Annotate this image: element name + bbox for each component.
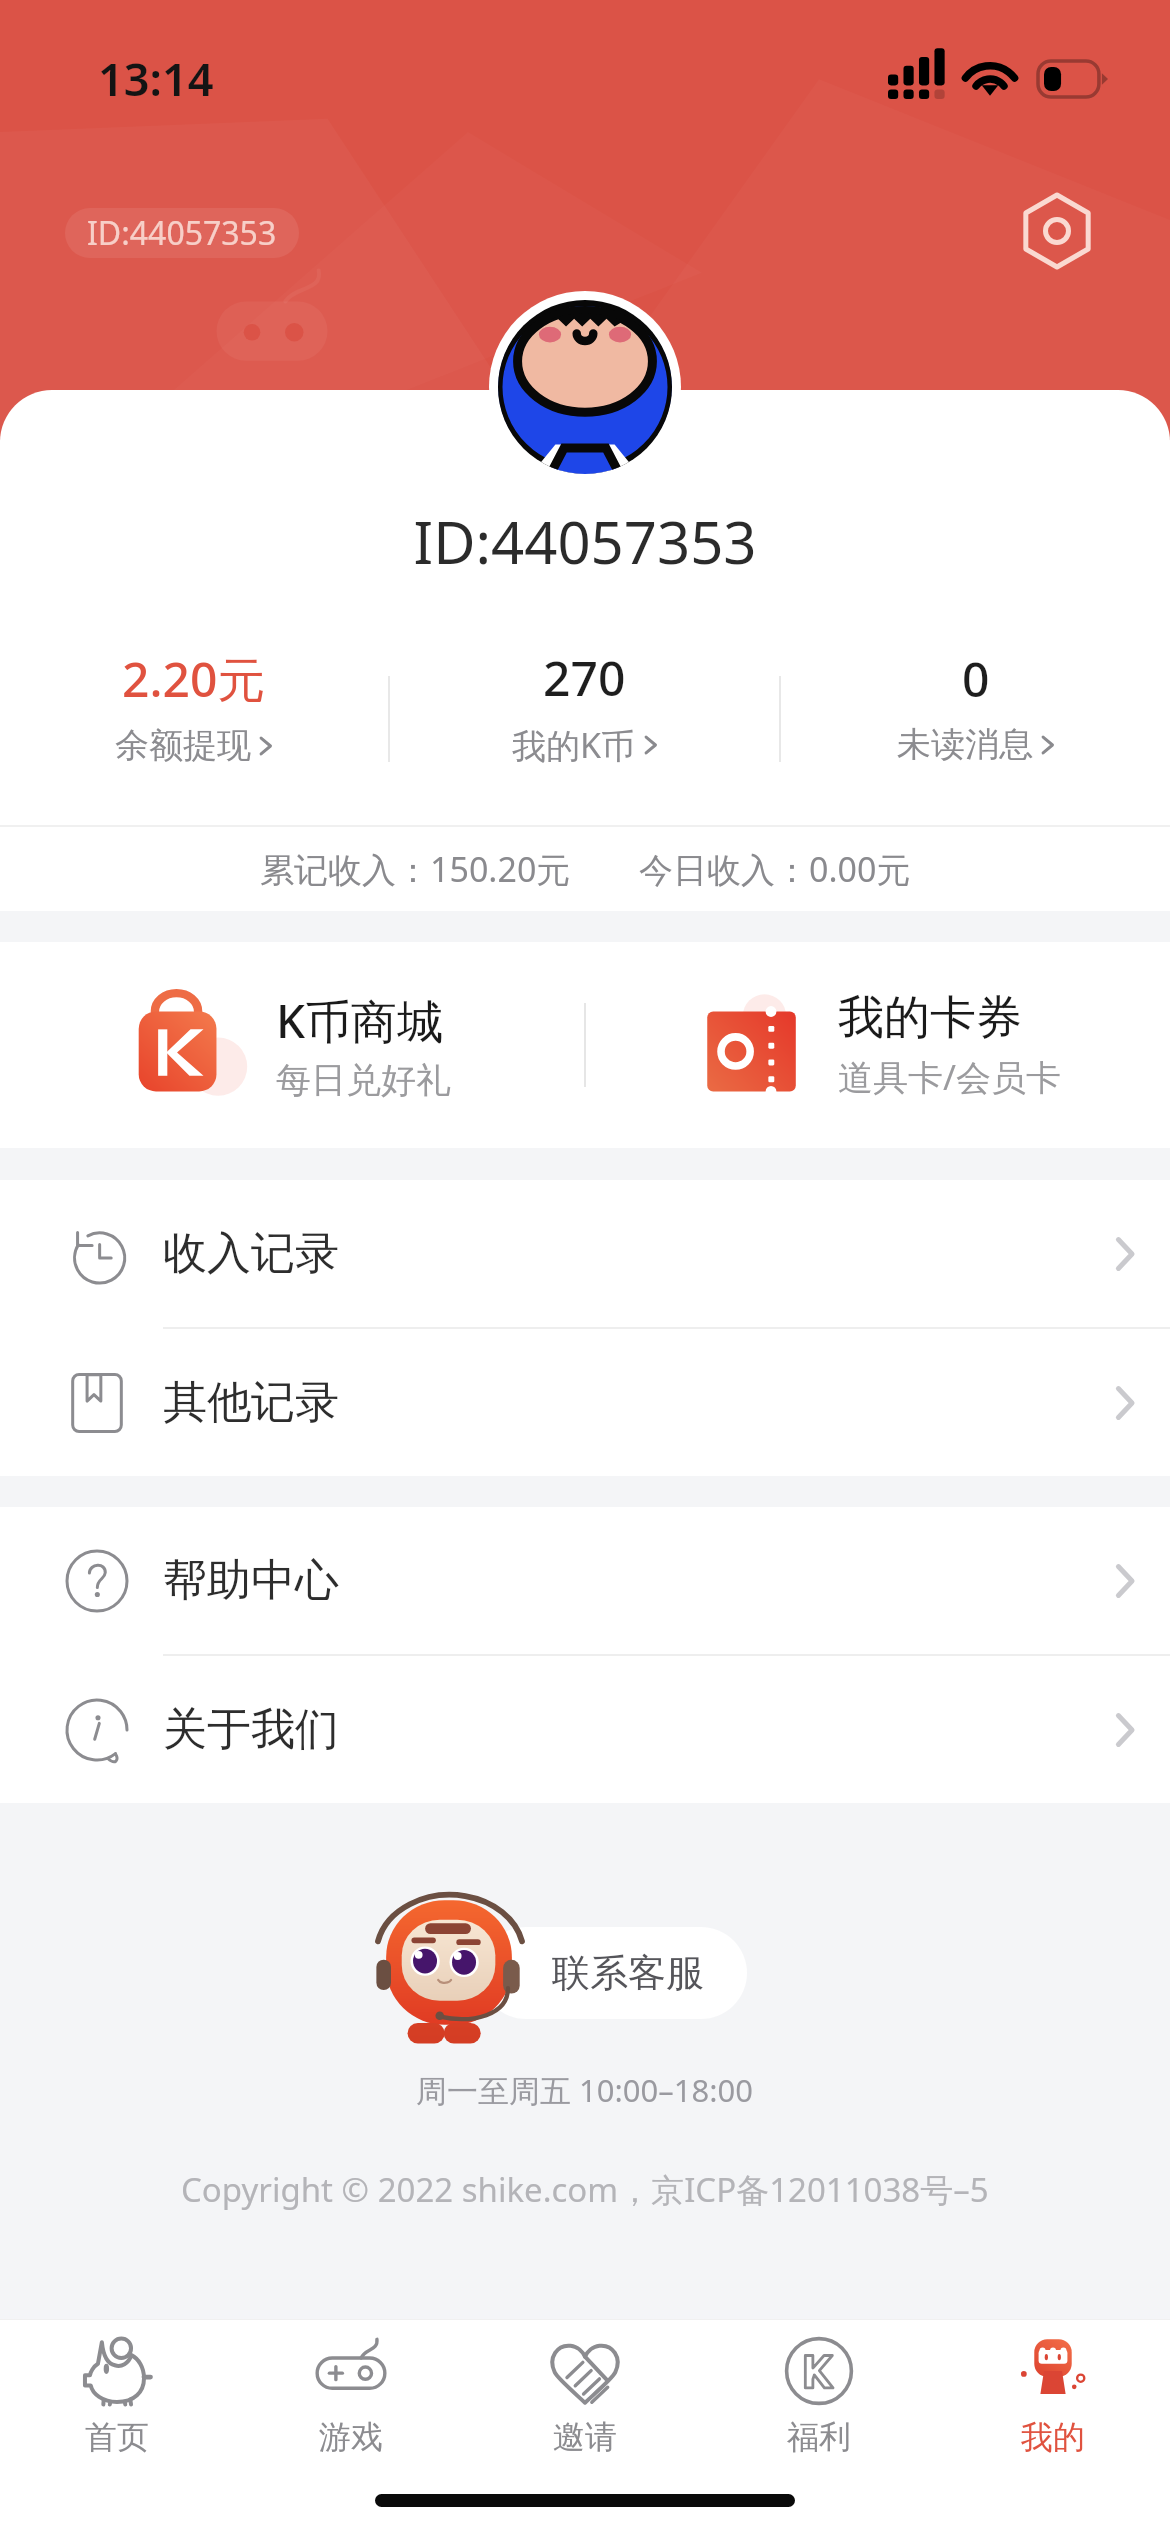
button[interactable]: 2.20元 [0,613,388,825]
button[interactable]: ID:44057353 [65,208,299,258]
staticText: 首页 [85,2417,149,2457]
staticText: 我的卡券 [838,989,1022,1047]
button[interactable]: 游戏 [234,2320,468,2470]
staticText: 福利 [787,2417,851,2457]
staticText: 游戏 [319,2417,383,2457]
staticText: 收入记录 [163,1226,339,1281]
staticText: 帮助中心 [163,1553,339,1608]
staticText: 每日兑好礼 [276,1058,451,1102]
staticText: K币商城 [276,989,444,1052]
staticText: 周一至周五 10:00–18:00 [416,2069,754,2111]
button[interactable]: 收入记录 [0,1180,1170,1327]
button[interactable]: 270 [390,613,779,825]
staticText: 累记收入：150.20元 [260,846,571,892]
staticText: Copyright © 2022 shike.com，京ICP备12011038… [181,2167,989,2212]
button[interactable]: Scan [1013,187,1101,275]
staticText: 其他记录 [163,1375,339,1430]
staticText: 未读消息 [897,723,1033,766]
staticText: 13:14 [98,48,214,109]
staticText: ID:44057353 [0,502,1170,581]
staticText: 邀请 [553,2417,617,2457]
staticText: 我的K币 [512,722,636,768]
button[interactable]: 首页 [0,2320,234,2470]
staticText: ID:44057353 [87,211,277,255]
staticText: 0 [962,646,990,711]
button[interactable]: 福利 [702,2320,936,2470]
staticText: 270 [543,645,626,710]
staticText: 余额提现 [115,724,251,767]
staticText: 道具卡/会员卡 [838,1053,1062,1101]
staticText: 我的 [1021,2417,1085,2457]
button[interactable]: 帮助中心 [0,1507,1170,1654]
staticText: 联系客服 [552,1949,704,1997]
button[interactable]: 我的卡券 [586,942,1170,1148]
button[interactable]: K币商城 [0,942,584,1148]
staticText: 2.20元 [122,646,266,712]
button[interactable]: 邀请 [468,2320,702,2470]
staticText: 今日收入：0.00元 [639,846,911,892]
button[interactable]: 联系客服 [480,1927,747,2019]
button[interactable]: 我的 [936,2320,1170,2470]
button[interactable]: 其他记录 [0,1329,1170,1476]
button[interactable]: 关于我们 [0,1656,1170,1803]
button[interactable]: 0 [781,613,1170,825]
staticText: 关于我们 [163,1702,339,1757]
